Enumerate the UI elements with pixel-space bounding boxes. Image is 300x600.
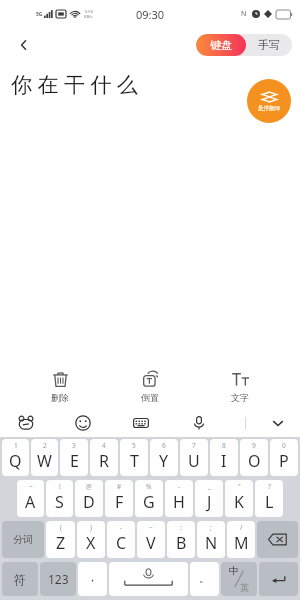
- staticText: ~: [149, 523, 153, 532]
- button[interactable]: 7: [180, 439, 208, 476]
- button[interactable]: ": [225, 480, 253, 517]
- staticText: U: [188, 450, 200, 472]
- staticText: 5: [132, 441, 136, 450]
- button[interactable]: ?: [255, 480, 283, 517]
- staticText: W: [37, 450, 52, 472]
- button[interactable]: 文字: [214, 370, 266, 403]
- staticText: Y: [159, 450, 169, 472]
- button[interactable]: 1: [2, 439, 29, 476]
- staticText: X: [86, 532, 96, 554]
- button[interactable]: 4: [90, 439, 118, 476]
- staticText: G: [143, 491, 155, 513]
- button[interactable]: 3: [60, 439, 88, 476]
- button[interactable]: Baidu input: [14, 411, 38, 435]
- button[interactable]: Back: [10, 31, 38, 59]
- button[interactable]: Hide keyboard: [266, 411, 290, 435]
- button[interactable]: 分词: [2, 521, 44, 558]
- staticText: KB/s: [84, 14, 93, 19]
- staticText: 手写: [258, 38, 280, 52]
- button[interactable]: 0: [270, 439, 298, 476]
- button[interactable]: (: [46, 521, 75, 558]
- button[interactable]: ): [77, 521, 105, 558]
- staticText: ): [90, 523, 92, 532]
- staticText: 4: [102, 441, 106, 450]
- button[interactable]: ~: [137, 521, 165, 558]
- staticText: 9: [252, 441, 256, 450]
- button[interactable]: :: [167, 521, 195, 558]
- staticText: ，: [87, 570, 98, 584]
- staticText: P: [279, 450, 289, 472]
- staticText: 6: [162, 441, 166, 450]
- button[interactable]: @: [75, 480, 103, 517]
- button[interactable]: Keyboard layout: [129, 411, 153, 435]
- button[interactable]: 符: [2, 562, 38, 596]
- staticText: 123: [48, 571, 69, 587]
- button[interactable]: 键盘: [196, 34, 246, 56]
- button[interactable]: 8: [210, 439, 238, 476]
- staticText: B: [176, 532, 187, 554]
- button[interactable]: /: [227, 521, 255, 558]
- staticText: 悬浮翻译: [258, 105, 280, 112]
- staticText: Z: [56, 532, 66, 554]
- staticText: 。: [199, 571, 210, 585]
- staticText: /: [240, 523, 243, 532]
- staticText: ?: [268, 482, 271, 491]
- button[interactable]: ;: [197, 521, 225, 558]
- staticText: -: [120, 523, 123, 532]
- staticText: 7: [192, 441, 196, 450]
- button[interactable]: 6: [150, 439, 178, 476]
- staticText: 删除: [51, 392, 69, 403]
- staticText: 分词: [13, 533, 33, 546]
- button[interactable]: 手写: [246, 34, 292, 56]
- button[interactable]: 5: [120, 439, 148, 476]
- button[interactable]: %: [135, 480, 163, 517]
- staticText: Q: [9, 450, 22, 472]
- button[interactable]: -: [107, 521, 135, 558]
- staticText: 3: [72, 441, 76, 450]
- button[interactable]: -: [165, 480, 193, 517]
- staticText: V: [146, 532, 156, 554]
- staticText: ": [238, 482, 241, 491]
- button[interactable]: Switch language: [221, 562, 257, 596]
- staticText: -: [178, 482, 181, 491]
- staticText: 你 在 干 什 么: [11, 70, 138, 99]
- button[interactable]: Space: [109, 562, 188, 596]
- staticText: 2: [43, 441, 47, 450]
- staticText: O: [248, 450, 261, 472]
- button[interactable]: #: [105, 480, 133, 517]
- button[interactable]: 倒置: [124, 370, 176, 403]
- button[interactable]: Voice input: [187, 411, 211, 435]
- staticText: 0: [282, 441, 286, 450]
- button[interactable]: 。: [190, 562, 219, 596]
- staticText: A: [25, 491, 36, 513]
- staticText: T: [130, 450, 139, 472]
- staticText: ;: [210, 523, 212, 532]
- staticText: N: [241, 9, 247, 19]
- button[interactable]: ，: [78, 562, 107, 596]
- staticText: C: [116, 532, 127, 554]
- button[interactable]: !: [46, 480, 73, 517]
- staticText: K: [234, 491, 244, 513]
- staticText: ~: [29, 482, 33, 491]
- button[interactable]: _: [195, 480, 223, 517]
- button[interactable]: 9: [240, 439, 268, 476]
- button[interactable]: 2: [31, 439, 58, 476]
- staticText: 09:30: [136, 7, 165, 22]
- staticText: H: [173, 491, 185, 513]
- button[interactable]: Backspace: [257, 521, 298, 558]
- button[interactable]: 123: [40, 562, 76, 596]
- staticText: I: [221, 450, 227, 472]
- button[interactable]: Emoji: [71, 411, 95, 435]
- staticText: J: [207, 491, 212, 513]
- staticText: F: [115, 491, 124, 513]
- staticText: _: [208, 482, 211, 491]
- button[interactable]: Enter: [259, 562, 298, 596]
- button[interactable]: 删除: [34, 370, 86, 403]
- button[interactable]: ~: [17, 480, 44, 517]
- staticText: N: [205, 532, 218, 554]
- staticText: 键盘: [210, 38, 232, 52]
- staticText: R: [99, 450, 109, 472]
- staticText: 文字: [231, 392, 249, 403]
- staticText: @: [86, 482, 92, 491]
- button[interactable]: 悬浮翻译: [247, 79, 291, 123]
